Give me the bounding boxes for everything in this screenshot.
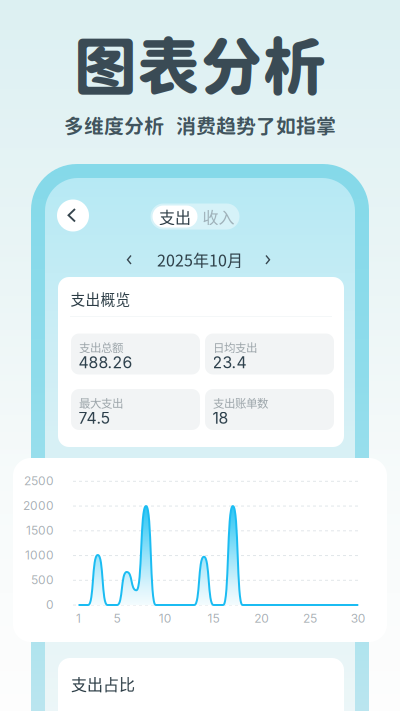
staticText: 18 — [212, 408, 228, 427]
staticText: 2025年10月 — [157, 248, 243, 271]
staticText: 30 — [351, 611, 366, 626]
staticText: 488.26 — [78, 353, 132, 372]
staticText: 1 — [76, 611, 81, 626]
staticText: 2500 — [24, 473, 54, 488]
staticText: 20 — [254, 611, 269, 626]
button[interactable]: Previous month — [118, 251, 140, 267]
staticText: 15 — [208, 611, 220, 626]
staticText: 25 — [303, 611, 317, 626]
staticText: 收入 — [202, 205, 234, 228]
staticText: 74.5 — [78, 408, 110, 427]
button[interactable]: 支出 — [152, 205, 197, 227]
staticText: 支出总额 — [79, 339, 123, 356]
staticText: 支出概览 — [70, 288, 130, 309]
button[interactable]: Back — [57, 199, 89, 231]
staticText: 支出占比 — [71, 672, 135, 695]
staticText: 0 — [46, 597, 54, 612]
staticText: 5 — [114, 611, 121, 626]
button[interactable]: Next month — [257, 251, 279, 267]
staticText: 支出账单数 — [213, 394, 268, 411]
staticText: 多维度分析 消费趋势了如指掌 — [64, 114, 336, 138]
staticText: 10 — [159, 611, 172, 626]
staticText: 2000 — [23, 498, 54, 513]
staticText: 23.4 — [212, 353, 246, 372]
staticText: 支出 — [159, 205, 191, 228]
button[interactable]: 收入 — [197, 205, 239, 227]
staticText: 1500 — [26, 523, 54, 537]
staticText: 最大支出 — [79, 394, 123, 411]
staticText: 1000 — [25, 548, 54, 562]
staticText: 图表分析 — [74, 29, 326, 103]
staticText: 500 — [31, 572, 54, 587]
staticText: 日均支出 — [213, 339, 257, 356]
